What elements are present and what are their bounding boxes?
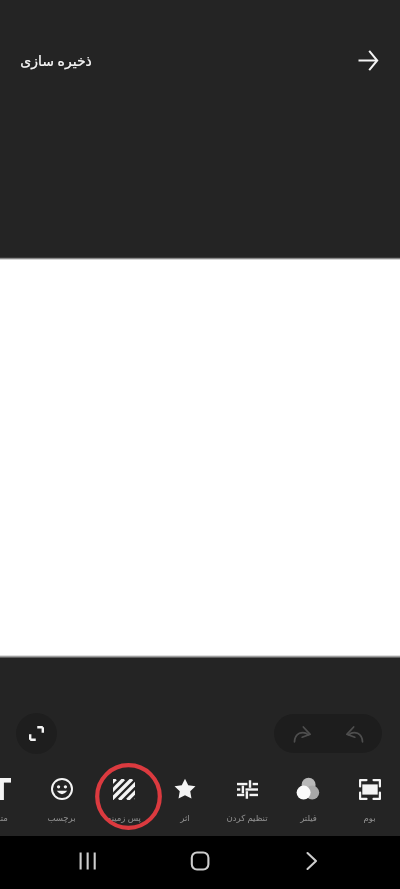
staticText: متن <box>0 813 8 823</box>
button[interactable]: Redo <box>277 714 327 753</box>
button[interactable]: Undo <box>329 714 379 753</box>
button[interactable]: فیلتر <box>278 766 339 826</box>
staticText: اثر <box>180 813 190 823</box>
staticText: فیلتر <box>300 813 317 823</box>
button[interactable]: اثر <box>154 766 215 826</box>
staticText: برچسب <box>47 813 76 823</box>
button[interactable]: متن <box>0 766 31 826</box>
button[interactable]: بوم <box>339 766 400 826</box>
staticText: تنظیم کردن <box>226 812 268 824</box>
button[interactable]: برچسب <box>31 766 92 826</box>
button[interactable]: پس زمینه <box>93 766 154 826</box>
staticText: ذخیره سازی <box>20 51 92 70</box>
button[interactable]: تنظیم کردن <box>216 766 277 826</box>
button[interactable]: Next <box>350 42 386 78</box>
button[interactable]: Expand <box>16 713 57 754</box>
staticText: بوم <box>363 813 376 823</box>
staticText: پس زمینه <box>107 812 141 824</box>
